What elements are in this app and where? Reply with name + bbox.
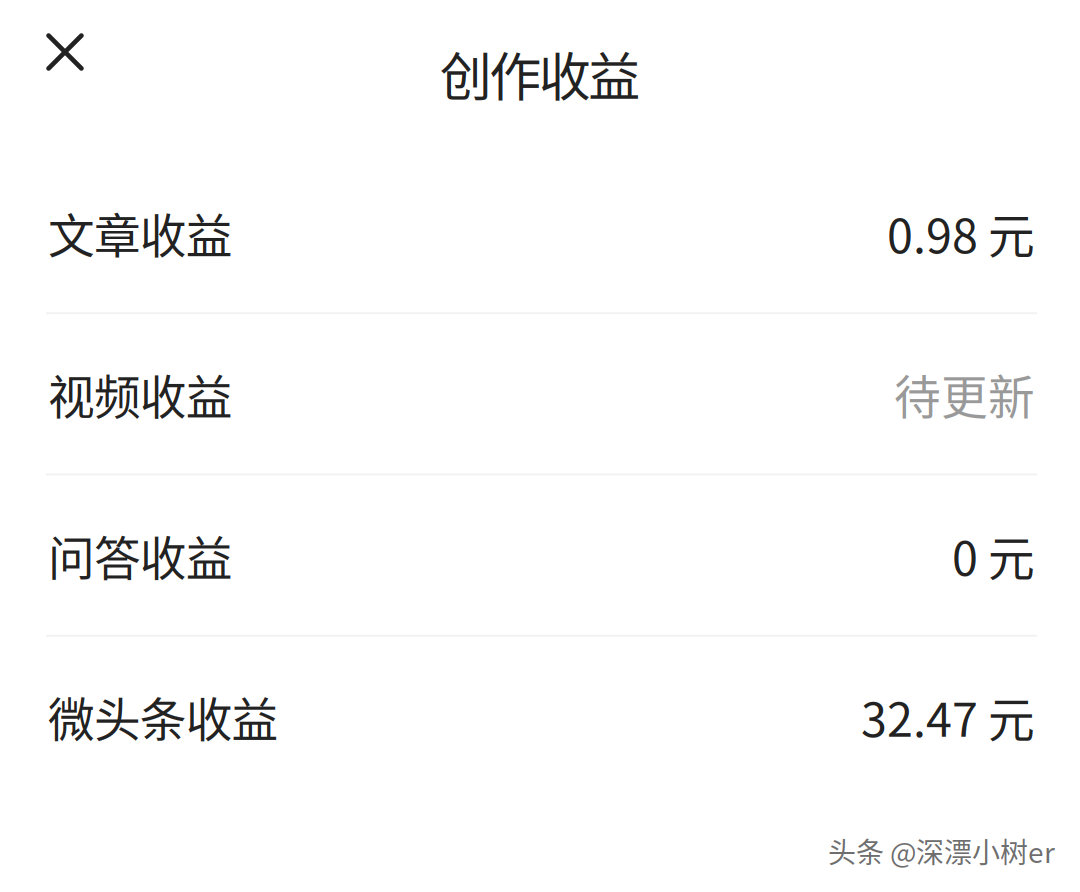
staticText: 文章收益 bbox=[48, 199, 233, 266]
staticText: 32.47 元 bbox=[861, 683, 1035, 750]
button[interactable]: 微头条收益 bbox=[0, 637, 1080, 796]
button[interactable]: 视频收益 bbox=[0, 314, 1080, 473]
button[interactable]: 文章收益 bbox=[0, 153, 1080, 312]
button[interactable]: Close bbox=[46, 10, 153, 94]
staticText: 微头条收益 bbox=[48, 683, 279, 750]
staticText: 0 元 bbox=[952, 521, 1035, 589]
staticText: 待更新 bbox=[894, 360, 1035, 428]
staticText: 头条 @深漂小树er bbox=[828, 830, 1055, 871]
staticText: 0.98 元 bbox=[887, 199, 1035, 266]
staticText: 问答收益 bbox=[48, 521, 233, 589]
button[interactable]: 问答收益 bbox=[0, 475, 1080, 635]
staticText: 视频收益 bbox=[48, 360, 233, 428]
staticText: 创作收益 bbox=[440, 36, 640, 111]
